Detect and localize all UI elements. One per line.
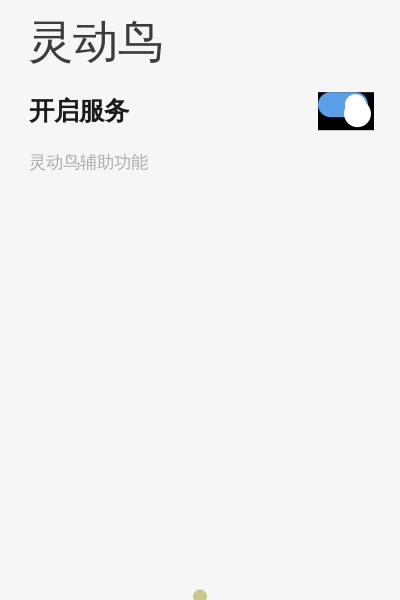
- staticText: 开启服务: [29, 96, 129, 127]
- button[interactable]: 开启服务: [0, 99, 400, 124]
- staticText: 灵动鸟辅助功能: [29, 152, 148, 173]
- staticText: 灵动鸟: [28, 14, 163, 70]
